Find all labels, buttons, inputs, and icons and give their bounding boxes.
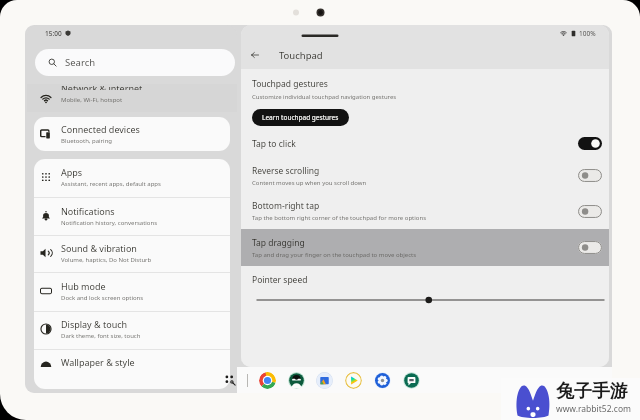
button[interactable]: Messages — [403, 372, 420, 389]
button[interactable]: Tap dragging — [578, 241, 602, 254]
staticText: 兔子手游 — [556, 380, 628, 403]
button[interactable]: Apps — [34, 159, 230, 197]
button[interactable]: Photos — [316, 372, 333, 389]
button[interactable]: Play Store — [345, 372, 362, 389]
staticText: Sound & vibration — [61, 242, 137, 254]
button[interactable]: Tap to click — [578, 137, 602, 150]
staticText: Tap the bottom right corner of the touch… — [252, 214, 427, 222]
staticText: Display & touch — [61, 318, 128, 330]
staticText: Connected devices — [61, 123, 140, 135]
staticText: Network & internet — [61, 86, 143, 90]
staticText: Notification history, conversations — [61, 219, 158, 227]
staticText: Learn touchpad gestures — [262, 113, 339, 122]
button[interactable]: Bottom-right tap — [578, 205, 602, 218]
button[interactable]: Settings — [374, 372, 391, 389]
staticText: Reverse scrolling — [252, 165, 320, 177]
staticText: Touchpad gestures — [252, 78, 328, 90]
button[interactable]: Connected devices — [34, 117, 230, 151]
button[interactable]: Hub mode — [34, 273, 230, 311]
button[interactable]: Tap to click — [241, 129, 609, 158]
button[interactable]: Chrome — [259, 372, 276, 389]
staticText: Touchpad — [279, 49, 323, 62]
staticText: Tap dragging — [252, 237, 305, 249]
staticText: Wallpaper & style — [61, 356, 135, 368]
staticText: 15:00 — [45, 29, 62, 38]
button[interactable]: Sound & vibration — [34, 236, 230, 272]
button[interactable]: Bottom-right tap — [241, 193, 609, 229]
staticText: Tap and drag your finger on the touchpad… — [252, 251, 417, 259]
staticText: Customize individual touchpad navigation… — [252, 93, 397, 101]
staticText: Pointer speed — [252, 274, 308, 286]
button[interactable]: Display & touch — [34, 312, 230, 349]
staticText: Content moves up when you scroll down — [252, 179, 367, 187]
button[interactable]: Notifications — [34, 198, 230, 235]
staticText: Bluetooth, pairing — [61, 137, 113, 145]
button[interactable]: Wallpaper & style — [34, 350, 230, 389]
button[interactable]: Reverse scrolling — [241, 158, 609, 193]
button[interactable]: Learn touchpad gestures — [252, 109, 349, 126]
button[interactable]: Back — [248, 48, 262, 62]
staticText: Notifications — [61, 205, 115, 217]
button[interactable]: Reverse scrolling — [578, 169, 602, 182]
staticText: Bottom-right tap — [252, 200, 320, 212]
staticText: Assistant, recent apps, default apps — [61, 180, 161, 188]
staticText: Mobile, Wi-Fi, hotspot — [61, 96, 123, 104]
staticText: Dark theme, font size, touch — [61, 332, 141, 340]
staticText: Volume, haptics, Do Not Disturb — [61, 256, 152, 264]
button[interactable]: Network & internet — [27, 84, 237, 112]
staticText: www.rabbit52.com — [556, 403, 631, 415]
button[interactable]: Tap dragging — [241, 229, 609, 266]
staticText: Apps — [61, 166, 83, 178]
staticText: Tap to click — [252, 138, 296, 150]
staticText: Search — [65, 56, 96, 69]
button[interactable]: Profile — [288, 372, 305, 389]
staticText: Dock and lock screen options — [61, 294, 144, 302]
staticText: Hub mode — [61, 280, 106, 292]
staticText: 100% — [579, 29, 596, 38]
button[interactable]: All apps — [222, 372, 238, 388]
button[interactable]: Search — [35, 49, 235, 76]
